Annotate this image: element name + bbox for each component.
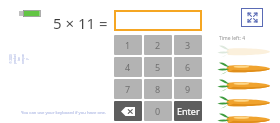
staticText: 4 <box>125 61 131 73</box>
staticText: © 2020 production company <box>9 54 29 64</box>
button[interactable]: 8 <box>144 79 172 99</box>
button[interactable]: 3 <box>174 35 202 55</box>
staticText: 6 <box>185 61 191 73</box>
button[interactable]: 1 <box>114 35 142 55</box>
button[interactable]: 5 <box>144 57 172 77</box>
staticText: 5 <box>155 61 161 73</box>
staticText: 0 <box>155 105 161 117</box>
staticText: 3 <box>185 39 191 51</box>
staticText: 9 <box>185 83 191 95</box>
button[interactable]: Enter <box>174 101 202 121</box>
button[interactable]: Progress <box>19 10 41 17</box>
button[interactable]: 7 <box>114 79 142 99</box>
button[interactable]: Backspace <box>114 101 142 121</box>
staticText: Time left: 4 <box>219 35 246 42</box>
staticText: 2 <box>155 39 161 51</box>
staticText: 7 <box>125 83 131 95</box>
button[interactable]: 4 <box>114 57 142 77</box>
staticText: Enter <box>177 105 200 117</box>
button[interactable]: 9 <box>174 79 202 99</box>
staticText: 1 <box>125 39 131 51</box>
staticText: You can use your keyboard if you have on… <box>21 110 107 116</box>
button[interactable]: Fullscreen <box>241 8 263 27</box>
button[interactable]: 2 <box>144 35 172 55</box>
staticText: 5 × 11 = <box>53 13 108 33</box>
button[interactable]: 0 <box>144 101 172 121</box>
button[interactable]: 6 <box>174 57 202 77</box>
staticText: 8 <box>155 83 161 95</box>
button[interactable]: Answer field <box>114 10 202 31</box>
